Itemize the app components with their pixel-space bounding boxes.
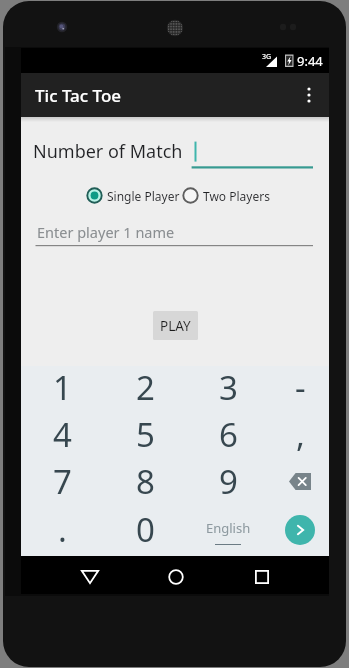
button[interactable]: 5: [107, 411, 183, 458]
button[interactable]: Next: [285, 515, 315, 545]
button[interactable]: 6: [190, 411, 266, 458]
button[interactable]: Recents: [219, 558, 304, 595]
button[interactable]: Two Players: [181, 186, 270, 205]
button[interactable]: Enter player 1 name: [37, 222, 175, 242]
staticText: 5: [136, 412, 155, 457]
button[interactable]: 4: [24, 411, 100, 458]
button[interactable]: Single Player: [85, 186, 180, 205]
staticText: 6: [219, 412, 238, 457]
staticText: 8: [136, 459, 155, 504]
staticText: 4: [53, 412, 72, 457]
button[interactable]: Number of Match: [33, 139, 183, 164]
staticText: 1: [53, 365, 72, 410]
staticText: 9: [219, 459, 238, 504]
button[interactable]: Back: [47, 558, 133, 595]
button[interactable]: .: [24, 506, 100, 553]
button[interactable]: PLAY: [153, 311, 198, 340]
staticText: Two Players: [203, 188, 270, 204]
staticText: 3G: [262, 52, 272, 62]
staticText: 3: [219, 365, 238, 410]
button[interactable]: 8: [107, 458, 183, 505]
staticText: English: [206, 519, 251, 537]
button[interactable]: ,: [262, 411, 338, 458]
button[interactable]: More options: [289, 75, 329, 115]
staticText: ,: [296, 412, 305, 457]
staticText: .: [58, 507, 67, 552]
button[interactable]: -: [262, 364, 338, 411]
button[interactable]: 0: [107, 506, 183, 553]
button[interactable]: Backspace: [276, 458, 324, 505]
button[interactable]: 7: [24, 458, 100, 505]
staticText: 7: [53, 459, 72, 504]
button[interactable]: 1: [24, 364, 100, 411]
button[interactable]: 2: [107, 364, 183, 411]
button[interactable]: 9: [190, 458, 266, 505]
staticText: -: [295, 365, 306, 410]
button[interactable]: Home: [132, 558, 219, 595]
staticText: 0: [136, 507, 155, 552]
button[interactable]: English: [190, 506, 266, 553]
button[interactable]: Tic Tac Toe: [35, 84, 122, 107]
staticText: Single Player: [107, 188, 180, 204]
staticText: PLAY: [160, 317, 191, 335]
button[interactable]: 3: [190, 364, 266, 411]
staticText: 9:44: [297, 52, 323, 70]
staticText: 2: [136, 365, 155, 410]
